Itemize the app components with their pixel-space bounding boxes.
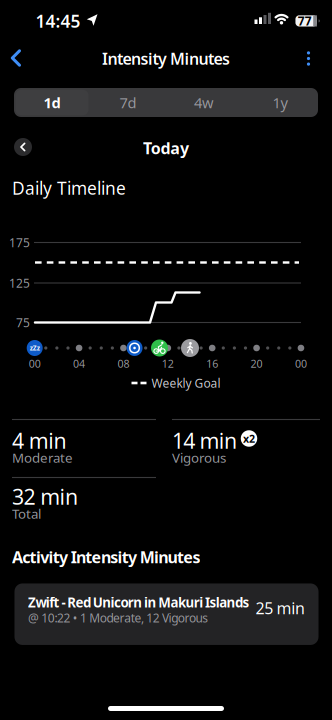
staticText: Zwift - Red Unicorn in Makuri Islands (28, 594, 249, 611)
staticText: 00 (295, 356, 307, 371)
staticText: 1y (272, 93, 287, 112)
button[interactable]: Previous day (10, 134, 36, 160)
staticText: 04 (73, 356, 85, 371)
staticText: Today (143, 137, 189, 159)
staticText: 4w (194, 93, 214, 112)
staticText: 125 (9, 275, 30, 291)
staticText: 16 (206, 356, 218, 371)
staticText: 175 (9, 234, 30, 250)
staticText: @ 10:22 • 1 Moderate, 12 Vigorous (28, 610, 208, 626)
staticText: x2 (243, 431, 255, 446)
staticText: 08 (117, 356, 129, 371)
staticText: 1d (43, 93, 60, 112)
button[interactable]: Back (0, 42, 32, 74)
staticText: 25 min (255, 597, 305, 618)
staticText: 14:45 (35, 9, 80, 32)
staticText: Total (12, 505, 41, 522)
staticText: Intensity Minutes (102, 48, 230, 69)
staticText: 7d (119, 93, 136, 112)
staticText: Vigorous (172, 449, 226, 466)
staticText: 75 (16, 314, 30, 330)
staticText: Moderate (12, 449, 73, 466)
staticText: 32 min (12, 482, 78, 511)
button[interactable]: 7d (90, 88, 166, 117)
staticText: zZz (30, 344, 40, 352)
staticText: 14 min (172, 426, 237, 455)
staticText: 4 min (12, 426, 67, 455)
staticText: Activity Intensity Minutes (12, 546, 200, 568)
staticText: Weekly Goal (151, 375, 220, 391)
staticText: 00 (29, 356, 41, 371)
staticText: 20 (251, 356, 263, 371)
button[interactable]: More options (294, 43, 322, 73)
staticText: 12 (162, 356, 174, 371)
button[interactable]: 1d (14, 88, 90, 117)
button[interactable]: Zwift - Red Unicorn in Makuri Islands (14, 583, 318, 645)
staticText: Daily Timeline (12, 176, 126, 199)
staticText: 77 (298, 13, 312, 29)
button[interactable]: 1y (242, 88, 318, 117)
button[interactable]: 4w (166, 88, 242, 117)
